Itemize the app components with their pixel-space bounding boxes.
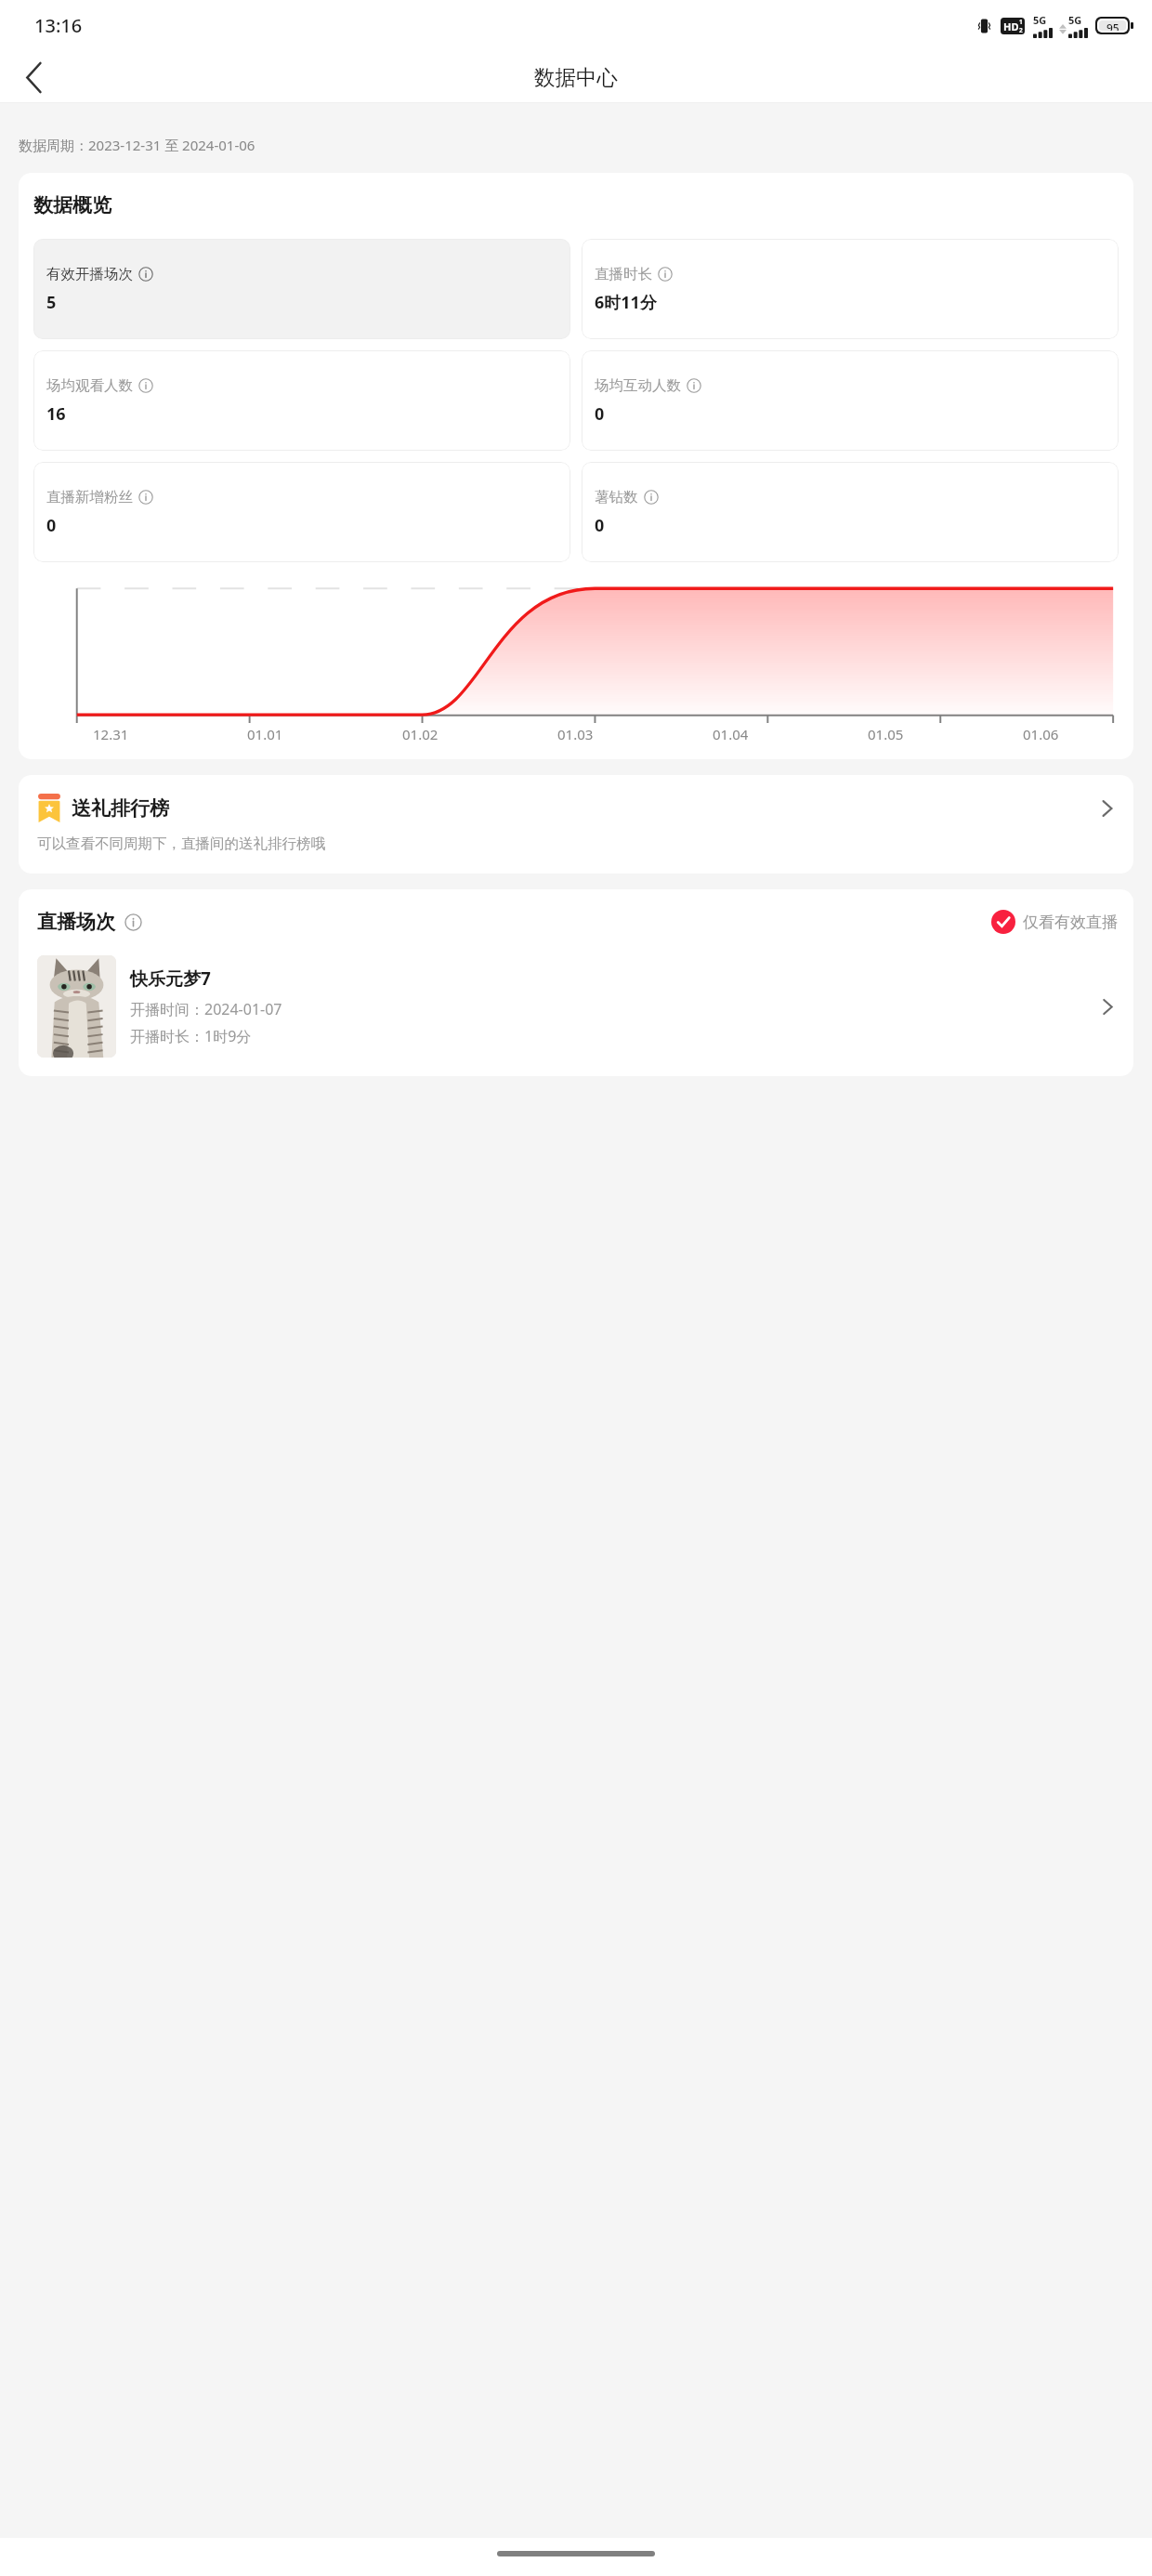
staticText: 快乐元梦7 [130,966,211,991]
button[interactable]: 薯钻数 [582,462,1119,562]
staticText: 直播时长 [595,265,652,283]
button[interactable]: 送礼排行榜 [19,775,1133,874]
staticText: 有效开播场次 [46,265,133,283]
staticText: 6时11分 [595,291,657,314]
staticText: 0 [595,514,605,537]
staticText: 01.05 [868,725,904,743]
staticText: 可以查看不同周期下，直播间的送礼排行榜哦 [37,835,325,853]
staticText: 16 [46,402,66,426]
staticText: 5G [1068,13,1082,27]
staticText: 01.04 [713,725,749,743]
staticText: 0 [46,514,57,537]
staticText: 95 [1106,20,1119,31]
staticText: 仅看有效直播 [1023,913,1118,932]
staticText: 12.31 [93,725,129,743]
button[interactable]: Back [12,55,57,99]
staticText: 直播新增粉丝 [46,488,133,506]
staticText: 1 [1019,18,1023,26]
staticText: 数据周期：2023-12-31 至 2024-01-06 [19,136,255,154]
staticText: 2 [1019,26,1023,34]
staticText: 开播时间：2024-01-07 [130,999,282,1019]
staticText: 数据中心 [534,64,618,90]
button[interactable]: 快乐元梦7 [37,955,1118,1058]
staticText: 5G [1033,13,1047,27]
button[interactable]: 直播时长 [582,239,1119,339]
button[interactable]: 仅看有效直播 [991,910,1118,934]
staticText: 01.01 [247,725,283,743]
staticText: 13:16 [34,13,83,38]
staticText: 薯钻数 [595,488,638,506]
button[interactable]: 直播新增粉丝 [33,462,570,562]
button[interactable]: 场均观看人数 [33,350,570,451]
staticText: 直播场次 [37,910,115,934]
staticText: 0 [595,402,605,426]
staticText: 场均互动人数 [595,376,681,395]
staticText: 5 [46,291,57,314]
button[interactable]: 有效开播场次 [33,239,570,339]
staticText: 01.03 [557,725,594,743]
staticText: 01.06 [1023,725,1059,743]
staticText: 数据概览 [33,193,111,217]
staticText: 开播时长：1时9分 [130,1026,252,1046]
staticText: 01.02 [402,725,439,743]
staticText: 送礼排行榜 [72,796,169,821]
staticText: HD [1003,20,1019,33]
button[interactable]: 场均互动人数 [582,350,1119,451]
staticText: 场均观看人数 [46,376,133,395]
